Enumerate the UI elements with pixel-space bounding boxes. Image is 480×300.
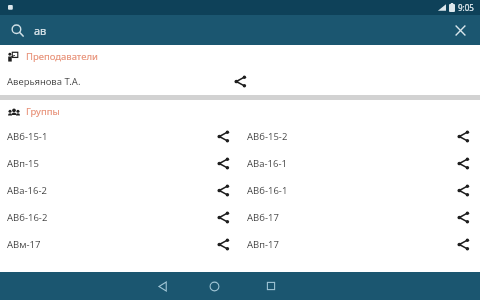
- button[interactable]: АВа-16-1: [240, 150, 480, 177]
- staticText: АВб-17: [247, 211, 279, 224]
- button[interactable]: АВб-16-2: [0, 204, 240, 231]
- staticText: АВб-15-1: [7, 130, 48, 143]
- staticText: АВб-16-2: [7, 211, 48, 224]
- staticText: АВп-15: [7, 157, 39, 170]
- staticText: АВа-16-2: [7, 184, 47, 197]
- button[interactable]: Share АВб-16-2: [206, 204, 240, 231]
- staticText: АВб-15-2: [247, 130, 288, 143]
- staticText: Группы: [26, 105, 60, 118]
- button[interactable]: Share АВб-16-1: [446, 177, 480, 204]
- button[interactable]: АВп-15: [0, 150, 240, 177]
- button[interactable]: Share Аверьянова Т.А.: [216, 68, 264, 95]
- button[interactable]: Аверьянова Т.А.: [0, 68, 480, 95]
- staticText: ав: [34, 23, 440, 38]
- staticText: 9:05: [458, 2, 474, 13]
- staticText: АВп-17: [247, 238, 279, 251]
- button[interactable]: Share АВб-17: [446, 204, 480, 231]
- button[interactable]: Home: [184, 272, 244, 300]
- staticText: Аверьянова Т.А.: [7, 75, 81, 88]
- staticText: АВа-16-1: [247, 157, 287, 170]
- button[interactable]: АВб-15-1: [0, 123, 240, 150]
- button[interactable]: АВа-16-2: [0, 177, 240, 204]
- button[interactable]: АВп-17: [240, 231, 480, 258]
- button[interactable]: Share АВп-17: [446, 231, 480, 258]
- button[interactable]: Share АВб-15-1: [206, 123, 240, 150]
- staticText: АВм-17: [7, 238, 41, 251]
- button[interactable]: АВб-15-2: [240, 123, 480, 150]
- button[interactable]: Back: [140, 272, 184, 300]
- button[interactable]: АВб-17: [240, 204, 480, 231]
- staticText: АВб-16-1: [247, 184, 288, 197]
- button[interactable]: Share АВа-16-1: [446, 150, 480, 177]
- button[interactable]: Recent apps: [244, 272, 298, 300]
- button[interactable]: Share АВа-16-2: [206, 177, 240, 204]
- button[interactable]: Share АВп-15: [206, 150, 240, 177]
- button[interactable]: Share АВм-17: [206, 231, 240, 258]
- button[interactable]: АВб-16-1: [240, 177, 480, 204]
- button[interactable]: АВм-17: [0, 231, 240, 258]
- button[interactable]: Преподаватели: [0, 45, 480, 68]
- button[interactable]: Группы: [0, 100, 480, 123]
- button[interactable]: Share АВб-15-2: [446, 123, 480, 150]
- button[interactable]: Search: [0, 15, 34, 45]
- staticText: Преподаватели: [26, 50, 98, 63]
- button[interactable]: Clear search: [440, 15, 480, 45]
